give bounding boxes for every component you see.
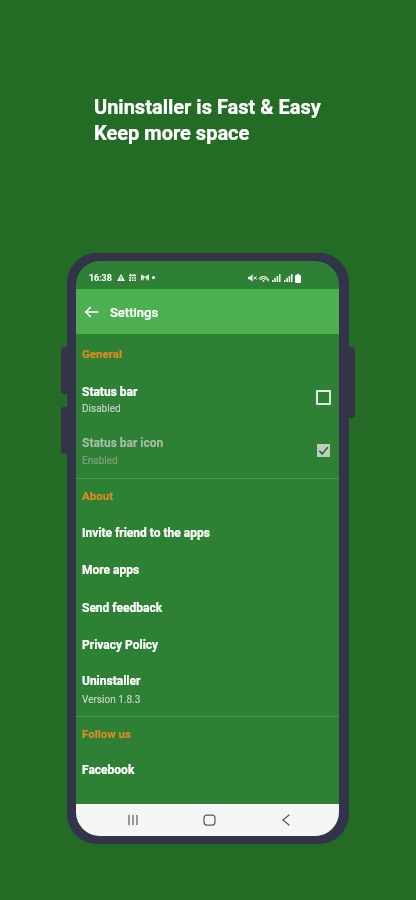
staticText: Follow us xyxy=(82,727,131,740)
button[interactable]: Status bar icon xyxy=(76,425,339,471)
staticText: Disabled xyxy=(82,403,121,415)
button[interactable]: Privacy Policy xyxy=(76,629,339,666)
staticText: Enabled xyxy=(82,455,118,467)
button[interactable]: Uninstaller xyxy=(76,665,339,705)
staticText: About xyxy=(82,489,114,502)
button[interactable]: Home xyxy=(190,804,228,836)
button[interactable]: Back xyxy=(267,804,304,836)
button[interactable]: Recent apps xyxy=(114,804,151,836)
staticText: Status bar xyxy=(82,385,138,399)
staticText: Uninstaller is Fast & Easy xyxy=(94,95,321,118)
staticText: Keep more space xyxy=(94,121,250,144)
staticText: Privacy Policy xyxy=(82,638,159,652)
staticText: Send feedback xyxy=(82,601,163,615)
staticText: Uninstaller xyxy=(82,674,141,688)
staticText: Status bar icon xyxy=(82,436,164,450)
button[interactable]: More apps xyxy=(76,554,339,591)
staticText: Facebook xyxy=(82,763,135,777)
staticText: Settings xyxy=(110,305,159,320)
button[interactable]: Invite friend to the apps xyxy=(76,517,339,554)
staticText: 16:38 xyxy=(89,273,112,284)
button[interactable]: Back xyxy=(79,300,103,324)
staticText: Version 1.8.3 xyxy=(82,694,141,706)
staticText: Invite friend to the apps xyxy=(82,526,210,540)
button[interactable]: Status bar xyxy=(76,374,339,420)
button[interactable]: Send feedback xyxy=(76,592,339,629)
staticText: More apps xyxy=(82,563,140,577)
staticText: General xyxy=(82,347,122,360)
button[interactable]: Facebook xyxy=(76,753,339,790)
